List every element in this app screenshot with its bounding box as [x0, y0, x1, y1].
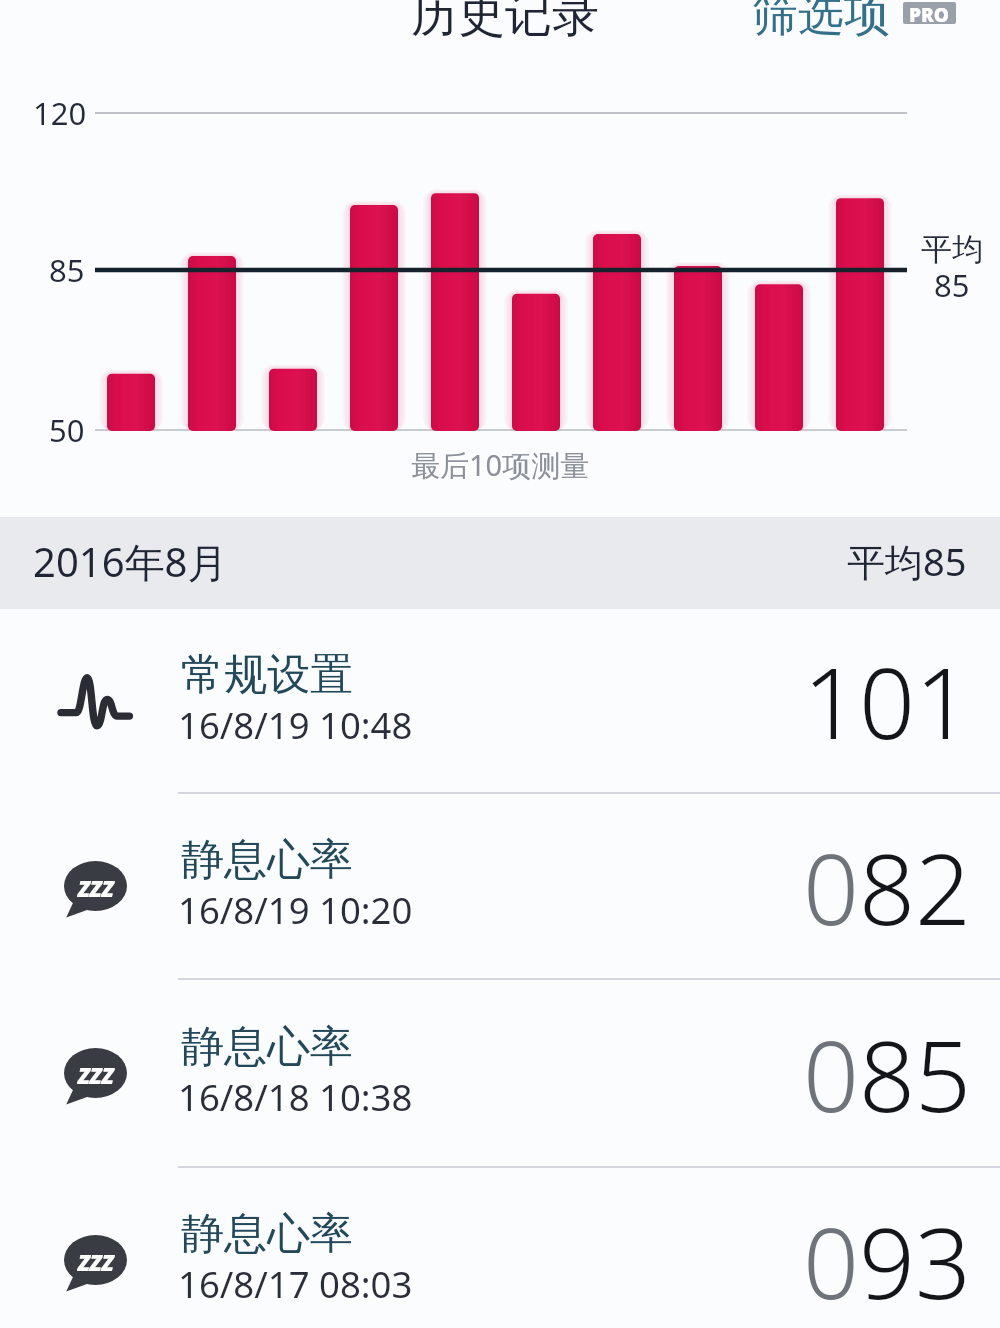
staticText: PRO: [909, 2, 950, 24]
staticText: ZZZ: [78, 1247, 114, 1277]
staticText: 120: [33, 92, 87, 134]
staticText: 16/8/17 08:03: [178, 1259, 413, 1309]
staticText: ZZZ: [78, 1060, 114, 1090]
staticText: 2016年8月: [33, 534, 228, 589]
staticText: ZZZ: [78, 873, 114, 903]
other: Resting heart rate measurement: [6, 1167, 184, 1328]
staticText: 16/8/19 10:48: [178, 700, 413, 750]
staticText: 082: [803, 820, 971, 953]
staticText: 常规设置: [181, 648, 353, 702]
staticText: 093: [803, 1194, 971, 1327]
staticText: 085: [803, 1007, 971, 1140]
other: ECG measurement: [6, 608, 184, 793]
button[interactable]: 筛选项 Filter (PRO): [752, 0, 956, 44]
button[interactable]: Resting heart rate measurement: [0, 793, 1000, 979]
other: Resting heart rate measurement: [6, 979, 184, 1167]
staticText: 静息心率: [181, 1020, 353, 1074]
staticText: 85: [934, 264, 970, 306]
staticText: 筛选项: [752, 0, 890, 44]
button[interactable]: Resting heart rate measurement: [0, 979, 1000, 1167]
staticText: 平均: [921, 230, 983, 269]
staticText: 101: [803, 634, 971, 767]
button[interactable]: ECG measurement: [0, 608, 1000, 793]
staticText: 最后10项测量: [411, 445, 590, 485]
other: Resting heart rate measurement: [6, 793, 184, 979]
staticText: 85: [49, 249, 85, 291]
staticText: 16/8/18 10:38: [178, 1072, 413, 1122]
button[interactable]: Resting heart rate measurement: [0, 1167, 1000, 1328]
staticText: 16/8/19 10:20: [178, 885, 413, 935]
staticText: 50: [49, 409, 85, 451]
staticText: 平均85: [847, 535, 967, 587]
staticText: 静息心率: [181, 1207, 353, 1261]
staticText: 静息心率: [181, 833, 353, 887]
staticText: 历史记录: [411, 0, 599, 44]
